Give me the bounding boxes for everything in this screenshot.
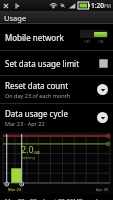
staticText: warning: [21, 155, 35, 160]
staticText: OFF: [84, 39, 91, 44]
staticText: Reset data count: [5, 80, 69, 91]
button[interactable]: Set data usage limit checkbox: [99, 59, 108, 68]
staticText: Set data usage limit: [5, 58, 99, 69]
button[interactable]: Mobile network: [0, 24, 113, 50]
button[interactable]: Expand Reset data count: [97, 84, 108, 95]
button[interactable]: Expand Data usage cycle: [97, 112, 108, 123]
staticText: Mar 22 - 28: about 28.56MB used: [5, 197, 98, 200]
staticText: Mobile network: [5, 32, 80, 43]
staticText: PM: [104, 3, 111, 9]
staticText: Mar 23: [8, 187, 22, 192]
staticText: On day 23 of each month: [5, 92, 71, 99]
button[interactable]: Data usage cycle: [0, 104, 113, 131]
staticText: GB: [34, 150, 40, 155]
button[interactable]: Mobile network toggle: [80, 30, 108, 38]
button[interactable]: Set data usage limit: [0, 51, 113, 75]
staticText: ON: [98, 39, 104, 44]
button[interactable]: Reset data count: [0, 76, 113, 103]
staticText: Usage: [4, 13, 27, 23]
staticText: 2.0: [21, 143, 34, 155]
staticText: Data usage cycle: [5, 108, 68, 119]
staticText: Mar 23 - Apr 22: [5, 120, 45, 127]
staticText: 1:20: [91, 1, 104, 10]
staticText: Apr 20: [96, 187, 109, 192]
